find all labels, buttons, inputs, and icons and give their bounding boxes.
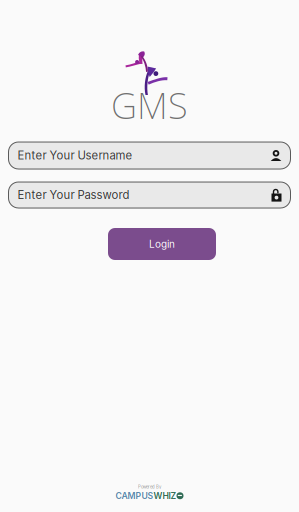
- staticText: CAMPUS: [115, 490, 153, 501]
- staticText: GMS: [111, 81, 188, 129]
- staticText: Enter Your Password: [17, 188, 129, 202]
- staticText: WHIZ: [153, 490, 176, 501]
- staticText: Login: [149, 238, 175, 250]
- button[interactable]: Login: [108, 228, 216, 260]
- staticText: Powered By: [138, 484, 161, 490]
- staticText: Enter Your Username: [17, 149, 132, 162]
